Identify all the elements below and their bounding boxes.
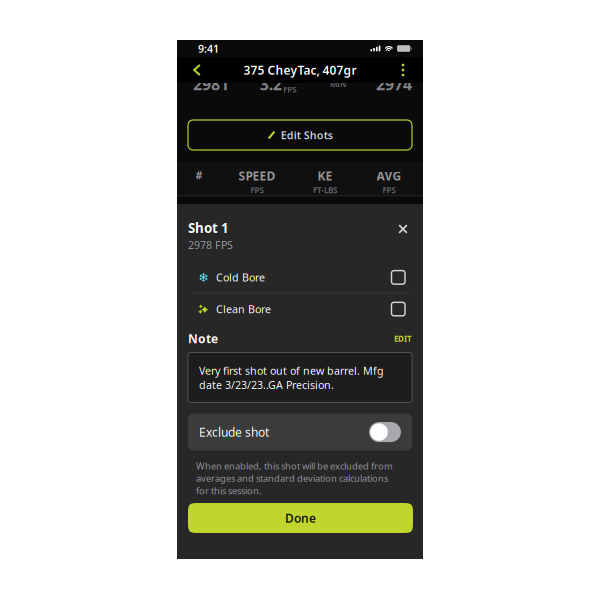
- staticText: Shot 1: [188, 219, 229, 237]
- staticText: #: [195, 168, 202, 182]
- button[interactable]: Exclude shot: [188, 414, 412, 451]
- button[interactable]: Edit Shots: [188, 120, 412, 150]
- button[interactable]: EDIT: [394, 333, 412, 344]
- button[interactable]: Back: [183, 57, 211, 83]
- button[interactable]: Close: [392, 219, 414, 239]
- staticText: Exclude shot: [199, 424, 269, 440]
- staticText: 2978 FPS: [188, 238, 233, 252]
- staticText: SPEED: [238, 168, 275, 184]
- staticText: Done: [285, 510, 316, 526]
- staticText: Clean Bore: [216, 302, 271, 316]
- staticText: Edit Shots: [281, 128, 333, 142]
- staticText: MIN: [330, 79, 346, 89]
- staticText: 9:41: [198, 41, 219, 56]
- staticText: 375 CheyTac, 407gr: [243, 62, 356, 78]
- staticText: AVG: [376, 168, 401, 184]
- button[interactable]: Clean Bore: [177, 294, 423, 325]
- staticText: 2974: [376, 73, 412, 95]
- staticText: When enabled, this shot will be excluded…: [196, 460, 393, 497]
- button[interactable]: Done: [188, 503, 413, 533]
- button[interactable]: More options: [389, 57, 417, 83]
- staticText: 3.2: [260, 73, 282, 95]
- staticText: FPS: [250, 185, 263, 195]
- staticText: 2981: [193, 73, 229, 95]
- staticText: Very first shot out of new barrel. Mfg d…: [199, 364, 384, 392]
- staticText: FT-LBS: [313, 185, 337, 195]
- staticText: FPS: [283, 84, 296, 95]
- staticText: EDIT: [394, 333, 412, 344]
- staticText: FPS: [382, 185, 395, 195]
- staticText: KE: [317, 168, 332, 184]
- staticText: Cold Bore: [216, 270, 265, 284]
- button[interactable]: Cold Bore: [177, 262, 423, 293]
- staticText: Note: [188, 331, 218, 346]
